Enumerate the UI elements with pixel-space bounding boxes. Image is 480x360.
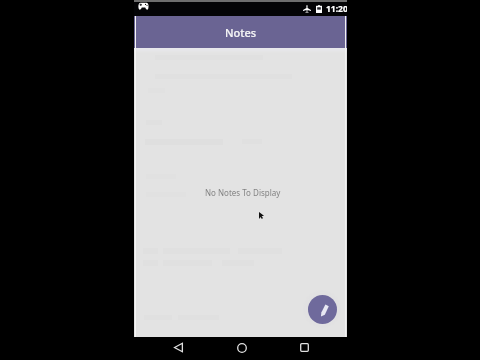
button[interactable]: New note (308, 295, 337, 324)
button[interactable]: Back (155, 337, 202, 360)
staticText: 11:20 (326, 3, 347, 15)
button[interactable]: Recent apps (281, 337, 328, 360)
staticText: No Notes To Display (205, 187, 281, 198)
button[interactable]: Home (218, 337, 265, 360)
staticText: Notes (225, 25, 257, 40)
